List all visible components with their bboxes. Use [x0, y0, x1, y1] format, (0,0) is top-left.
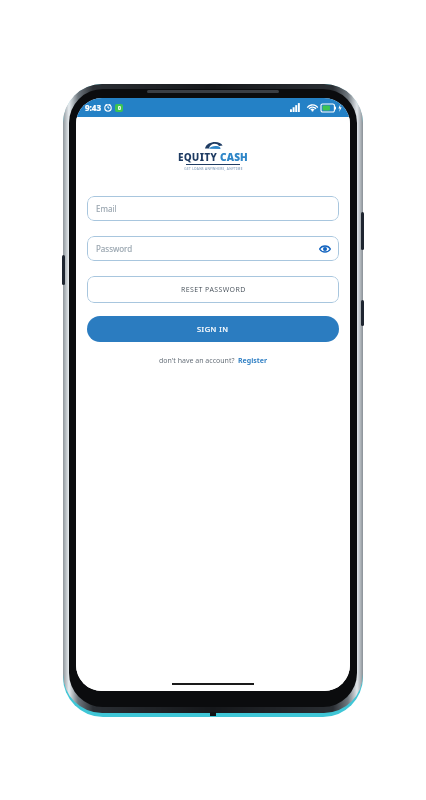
staticText: Register: [238, 356, 268, 366]
staticText: RESET PASSWORD: [181, 285, 246, 295]
staticText: SIGN IN: [197, 324, 229, 334]
staticText: Email: [96, 203, 117, 214]
button[interactable]: Password: [87, 236, 339, 261]
staticText: 9:43: [85, 102, 101, 113]
staticText: don't have an account?: [159, 356, 235, 366]
staticText: Password: [96, 243, 133, 254]
staticText: CASH: [220, 150, 248, 164]
staticText: GET LOANS ANYWHERE, ANYTIME: [184, 167, 243, 171]
staticText: EQUITY: [178, 150, 218, 164]
button[interactable]: Show password: [318, 242, 331, 255]
button[interactable]: Register: [238, 356, 268, 366]
staticText: 0: [118, 105, 121, 112]
button[interactable]: RESET PASSWORD: [87, 276, 339, 303]
button[interactable]: SIGN IN: [87, 316, 339, 342]
button[interactable]: Email: [87, 196, 339, 221]
